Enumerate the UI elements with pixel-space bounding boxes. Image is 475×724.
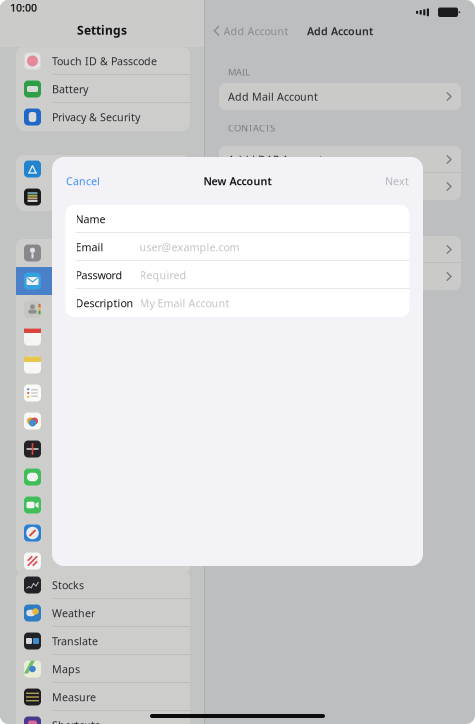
staticText: Add Account [307, 24, 373, 38]
staticText: Translate [52, 634, 98, 648]
button[interactable]: Weather [16, 599, 190, 627]
staticText: Add CalDAV Account [228, 242, 332, 257]
staticText: New Account [203, 174, 271, 188]
staticText: user@example.com [139, 240, 239, 254]
button[interactable]: Camera [16, 435, 190, 463]
staticText: Required [139, 268, 186, 282]
staticText: Maps [52, 662, 80, 676]
staticText: Privacy & Security [52, 110, 140, 124]
button[interactable]: Shortcuts [16, 711, 190, 724]
button[interactable]: App Store [16, 155, 190, 183]
button[interactable]: Reminders [16, 379, 190, 407]
staticText: Shortcuts [52, 718, 100, 724]
staticText: CONTACTS [228, 122, 275, 134]
button[interactable]: Add LDAP Account [219, 146, 461, 173]
button[interactable]: Add Account [205, 19, 288, 43]
staticText: Description [75, 296, 133, 310]
staticText: 10:00 [10, 0, 37, 15]
button[interactable]: Add Mail Account [219, 83, 461, 110]
staticText: Battery [52, 82, 88, 96]
button[interactable]: Next [371, 157, 423, 205]
button[interactable]: News [16, 547, 190, 575]
button[interactable]: Calendar [16, 323, 190, 351]
staticText: Weather [52, 606, 95, 620]
button[interactable]: Contacts [16, 295, 190, 323]
button[interactable]: Mail [16, 267, 190, 295]
button[interactable]: Battery [16, 75, 190, 103]
button[interactable]: Maps [16, 655, 190, 683]
button[interactable]: Cancel [52, 157, 114, 205]
button[interactable]: Privacy & Security [16, 103, 190, 131]
button[interactable]: Stocks [16, 571, 190, 599]
button[interactable]: Touch ID & Passcode [16, 47, 190, 75]
button[interactable]: Wallet [16, 183, 190, 211]
staticText: Add LDAP Account [228, 152, 323, 167]
button[interactable]: Add CalDAV Account [219, 236, 461, 263]
button[interactable]: Safari [16, 519, 190, 547]
staticText: Settings [77, 22, 127, 38]
staticText: Cancel [66, 174, 100, 188]
button[interactable]: Photos [16, 407, 190, 435]
staticText: MAIL [228, 66, 250, 78]
staticText: Password [75, 268, 122, 282]
staticText: Add Mail Account [228, 89, 318, 104]
button[interactable]: Translate [16, 627, 190, 655]
staticText: Email [75, 240, 103, 254]
staticText: Name [75, 212, 105, 226]
staticText: Stocks [52, 578, 84, 592]
staticText: Add Account [223, 24, 288, 38]
staticText: Measure [52, 690, 96, 704]
staticText: Next [385, 174, 409, 188]
button[interactable]: Notes [16, 351, 190, 379]
staticText: My Email Account [139, 296, 229, 310]
button[interactable]: Add CardDAV Account [219, 173, 461, 200]
button[interactable]: Measure [16, 683, 190, 711]
button[interactable]: Add Subscribed Calendar [219, 263, 461, 290]
staticText: Add CardDAV Account [228, 179, 340, 194]
staticText: Touch ID & Passcode [52, 54, 157, 68]
button[interactable]: FaceTime [16, 491, 190, 519]
button[interactable]: Messages [16, 463, 190, 491]
button[interactable]: Passwords [16, 239, 190, 267]
